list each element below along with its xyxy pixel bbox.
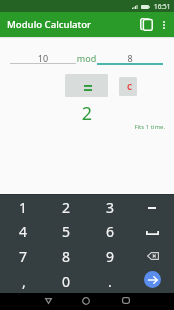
staticText: mod (76, 52, 97, 64)
staticText: Modulo Calculator (7, 18, 92, 31)
staticText: . (108, 272, 112, 291)
button[interactable]: 1 (0, 194, 43, 218)
button[interactable] (65, 74, 108, 97)
staticText: , (22, 272, 26, 291)
button[interactable]: Minus (130, 194, 174, 218)
button[interactable]: 7 (0, 243, 43, 268)
staticText: C (127, 81, 133, 92)
staticText: 5 (62, 222, 71, 241)
button[interactable]: 4 (0, 218, 43, 243)
button[interactable]: 5 (43, 218, 86, 243)
button[interactable]: Space (130, 218, 174, 243)
button[interactable]: 3 (86, 194, 130, 218)
staticText: 8 (62, 247, 71, 266)
staticText: 2 (0, 101, 174, 126)
staticText: 8 (97, 52, 163, 64)
staticText: 6 (106, 222, 115, 241)
other: Minus (146, 200, 158, 212)
staticText: 3 (106, 198, 115, 217)
staticText: 0 (62, 272, 71, 291)
staticText: Fits 1 time. (0, 123, 165, 131)
button[interactable]: Go (130, 268, 174, 293)
staticText: 1 (19, 198, 28, 217)
staticText: 2 (62, 198, 71, 217)
staticText: 9 (106, 247, 115, 266)
button[interactable]: 6 (86, 218, 130, 243)
button[interactable]: 9 (86, 243, 130, 268)
button[interactable]: Recents (112, 293, 140, 310)
button[interactable]: , (0, 268, 43, 293)
other: Backspace (145, 250, 160, 261)
button[interactable]: Copy (135, 12, 157, 37)
button[interactable]: C (119, 77, 137, 96)
button[interactable]: Back (34, 293, 62, 310)
button[interactable]: Home (72, 293, 100, 310)
button[interactable]: More options (158, 12, 170, 37)
button[interactable]: Backspace (130, 243, 174, 268)
button[interactable]: 8 (43, 243, 86, 268)
button[interactable]: 0 (43, 268, 86, 293)
staticText: 10 (10, 52, 76, 64)
other: Go (144, 271, 161, 288)
staticText: 7 (19, 247, 28, 266)
button[interactable]: 2 (43, 194, 86, 218)
staticText: 4 (19, 222, 28, 241)
button[interactable]: . (86, 268, 130, 293)
other: Space (145, 225, 160, 237)
staticText: 16:51 (154, 2, 171, 11)
